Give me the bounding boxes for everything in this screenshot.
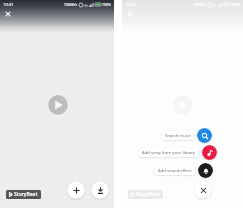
button[interactable]: Download: [91, 181, 109, 199]
button[interactable]: Search music: [162, 131, 194, 140]
button[interactable]: [198, 163, 213, 178]
staticText: 1306K/s: [64, 2, 78, 7]
staticText: Add sound effect: [158, 168, 192, 174]
button[interactable]: [197, 128, 212, 143]
staticText: StoryBeat: [136, 191, 160, 198]
staticText: 100%: [231, 2, 240, 7]
staticText: Search music: [165, 133, 191, 139]
staticText: Add song from your library: [142, 150, 196, 156]
button[interactable]: Add song from your library: [139, 148, 199, 157]
staticText: 10:31: [125, 2, 136, 8]
button[interactable]: StoryBeat: [128, 190, 163, 199]
button[interactable]: Close: [125, 9, 135, 19]
staticText: 100%: [102, 2, 111, 7]
staticText: 10:31: [3, 2, 14, 8]
button[interactable]: StoryBeat: [6, 190, 41, 199]
staticText: StoryBeat: [14, 191, 38, 198]
button[interactable]: Close menu: [194, 181, 212, 199]
staticText: 1306K/s: [193, 2, 207, 7]
button[interactable]: [202, 145, 217, 160]
button[interactable]: Add sound effect: [155, 166, 195, 175]
button[interactable]: Close: [3, 9, 13, 19]
button[interactable]: Add: [67, 181, 85, 199]
